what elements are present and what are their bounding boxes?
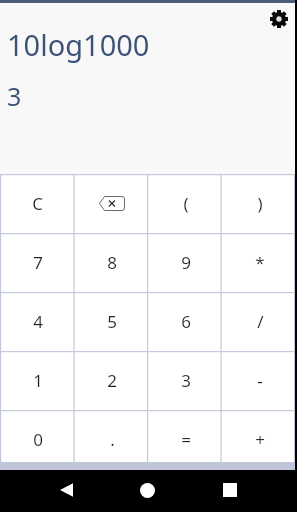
staticText: / [257, 310, 264, 333]
staticText: 1 [33, 369, 43, 392]
button[interactable]: 8 [75, 233, 149, 292]
button[interactable]: Settings [261, 1, 297, 37]
other: Backspace [99, 196, 125, 211]
staticText: 8 [107, 251, 117, 274]
staticText: 5 [107, 310, 117, 333]
button[interactable]: 6 [149, 292, 223, 351]
button[interactable]: ( [149, 174, 223, 233]
staticText: 2 [107, 369, 117, 392]
button[interactable]: Recents [210, 470, 250, 512]
staticText: + [255, 428, 265, 451]
staticText: * [255, 251, 265, 274]
staticText: 3 [181, 369, 191, 392]
staticText: . [110, 428, 115, 451]
staticText: 6 [181, 310, 191, 333]
button[interactable]: ) [223, 174, 297, 233]
button[interactable]: - [223, 351, 297, 410]
staticText: 9 [181, 251, 191, 274]
button[interactable]: 9 [149, 233, 223, 292]
button[interactable]: Home [127, 470, 167, 512]
staticText: ) [257, 192, 263, 215]
button[interactable]: + [223, 410, 297, 462]
button[interactable]: 4 [0, 292, 75, 351]
button[interactable]: C [0, 174, 75, 233]
staticText: ( [183, 192, 189, 215]
button[interactable]: 5 [75, 292, 149, 351]
button[interactable]: . [75, 410, 149, 462]
button[interactable]: 1 [0, 351, 75, 410]
staticText: 4 [33, 310, 43, 333]
staticText: C [32, 192, 43, 215]
staticText: 10log1000 [7, 25, 150, 64]
button[interactable]: = [149, 410, 223, 462]
staticText: 3 [7, 79, 22, 113]
button[interactable]: / [223, 292, 297, 351]
button[interactable]: Backspace [75, 174, 149, 233]
button[interactable]: 3 [149, 351, 223, 410]
button[interactable]: Back [46, 470, 86, 512]
button[interactable]: 0 [0, 410, 75, 462]
staticText: 0 [33, 428, 43, 451]
staticText: = [181, 428, 191, 451]
staticText: 7 [33, 251, 43, 274]
button[interactable]: 2 [75, 351, 149, 410]
button[interactable]: * [223, 233, 297, 292]
staticText: - [257, 369, 263, 392]
button[interactable]: 7 [0, 233, 75, 292]
